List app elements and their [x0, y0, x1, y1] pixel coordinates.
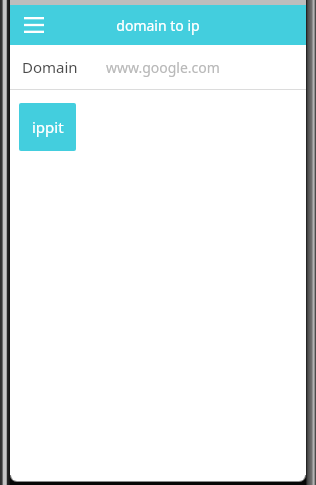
staticText: Domain	[22, 57, 78, 77]
button[interactable]: Domain	[10, 45, 306, 89]
button[interactable]: Open navigation menu	[19, 10, 49, 40]
staticText: www.google.com	[106, 58, 220, 77]
staticText: domain to ip	[10, 16, 306, 35]
staticText: ippit	[32, 117, 64, 137]
button[interactable]: ippit	[19, 103, 76, 151]
